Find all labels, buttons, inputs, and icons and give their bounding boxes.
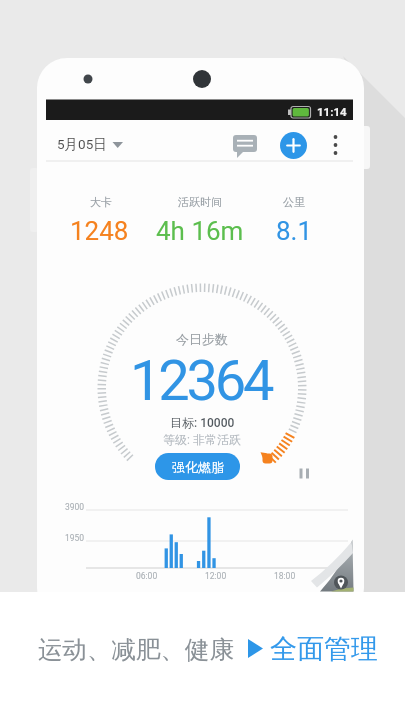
staticText: 4h 16m [156, 216, 244, 246]
staticText: 12:00 [205, 571, 227, 581]
button[interactable] [244, 632, 384, 666]
staticText: 12364 [130, 348, 272, 414]
button[interactable] [229, 131, 261, 159]
staticText: 18:00 [274, 571, 296, 581]
staticText: 目标: 10000 [170, 415, 235, 430]
staticText: 活跃时间 [178, 195, 222, 209]
button[interactable] [325, 129, 346, 161]
staticText: 8.1 [276, 216, 313, 246]
button[interactable] [55, 128, 130, 160]
staticText: 06:00 [136, 571, 158, 581]
staticText: 运动、减肥、健康 [38, 634, 234, 665]
button[interactable] [280, 132, 307, 159]
staticText: 3900 [65, 502, 85, 512]
staticText: 强化燃脂 [172, 459, 224, 475]
staticText: 全面管理 [270, 632, 378, 666]
staticText: 今日步数 [176, 331, 228, 347]
staticText: 等级: 非常活跃 [163, 432, 241, 447]
button[interactable] [294, 463, 314, 483]
staticText: 1248 [70, 216, 129, 246]
staticText: 1950 [65, 533, 85, 543]
staticText: 5月05日 [57, 136, 107, 153]
staticText: 大卡 [90, 195, 112, 209]
staticText: 公里 [283, 195, 305, 209]
staticText: 11:14 [317, 105, 347, 118]
button[interactable]: 强化燃脂 [155, 453, 240, 480]
